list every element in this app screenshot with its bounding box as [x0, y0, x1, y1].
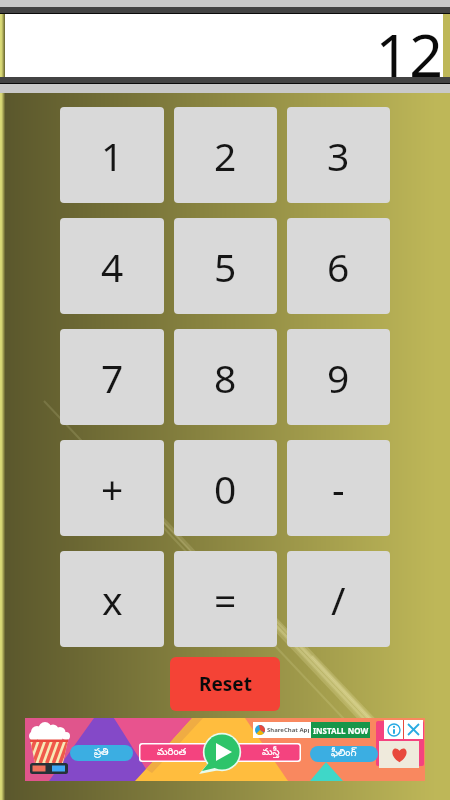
button[interactable]: Ad information: [384, 720, 403, 739]
staticText: మస్తీ: [262, 746, 280, 760]
button[interactable]: x: [60, 551, 164, 647]
staticText: 7: [101, 351, 124, 404]
button[interactable]: ప్రతి: [70, 745, 133, 761]
button[interactable]: 2: [174, 107, 277, 203]
button[interactable]: -: [287, 440, 390, 536]
staticText: ఫీలింగ్: [331, 747, 357, 761]
staticText: /: [331, 573, 346, 626]
button[interactable]: 1: [60, 107, 164, 203]
staticText: 6: [327, 240, 350, 293]
staticText: 5: [214, 240, 237, 293]
staticText: 12: [375, 14, 443, 77]
button[interactable]: Close ad: [404, 720, 423, 739]
button[interactable]: =: [174, 551, 277, 647]
button[interactable]: 0: [174, 440, 277, 536]
staticText: 9: [327, 351, 350, 404]
button[interactable]: ఫీలింగ్: [310, 746, 378, 762]
button[interactable]: /: [287, 551, 390, 647]
button[interactable]: 6: [287, 218, 390, 314]
staticText: ప్రతి: [94, 746, 109, 760]
staticText: x: [102, 573, 123, 626]
staticText: =: [214, 573, 237, 626]
button[interactable]: Reset: [170, 657, 280, 711]
button[interactable]: 4: [60, 218, 164, 314]
button[interactable]: 5: [174, 218, 277, 314]
button[interactable]: INSTALL NOW: [311, 722, 370, 738]
staticText: +: [101, 462, 124, 515]
staticText: ShareChat App: [267, 726, 309, 734]
staticText: మరింత: [157, 746, 187, 760]
button[interactable]: ప్రతి: [25, 718, 425, 781]
button[interactable]: 7: [60, 329, 164, 425]
button[interactable]: 3: [287, 107, 390, 203]
staticText: 4: [101, 240, 124, 293]
button[interactable]: 8: [174, 329, 277, 425]
button[interactable]: 9: [287, 329, 390, 425]
button[interactable]: +: [60, 440, 164, 536]
staticText: 8: [214, 351, 237, 404]
staticText: 0: [214, 462, 237, 515]
staticText: 1: [101, 129, 124, 182]
staticText: INSTALL NOW: [313, 725, 369, 736]
staticText: 3: [327, 129, 350, 182]
staticText: 2: [214, 129, 237, 182]
staticText: Reset: [199, 671, 252, 697]
staticText: -: [332, 462, 345, 515]
